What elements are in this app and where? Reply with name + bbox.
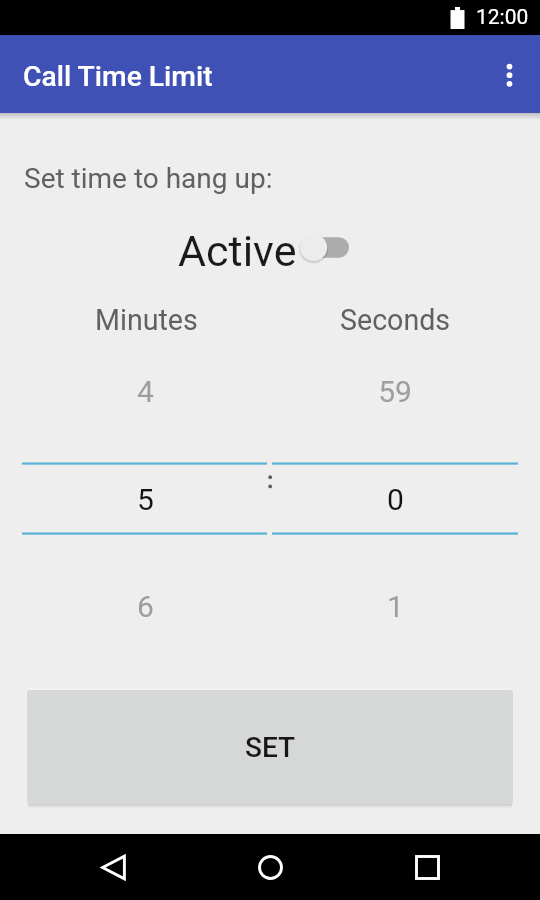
button[interactable]: 6 — [75, 589, 215, 629]
staticText: 6 — [137, 589, 154, 624]
button[interactable]: 5 — [75, 482, 215, 522]
button[interactable]: 4 — [75, 374, 215, 414]
staticText: 59 — [378, 374, 412, 409]
staticText: 5 — [137, 482, 154, 517]
button[interactable]: Active toggle — [297, 233, 353, 263]
staticText: Call Time Limit — [23, 60, 213, 93]
button[interactable]: Recent apps — [403, 834, 451, 900]
staticText: Set time to hang up: — [24, 162, 273, 195]
staticText: SET — [245, 731, 296, 764]
staticText: Seconds — [340, 303, 451, 337]
staticText: Minutes — [95, 303, 198, 337]
button[interactable]: 0 — [325, 482, 465, 522]
staticText: 1 — [387, 589, 404, 624]
staticText: 12:00 — [476, 5, 529, 30]
button[interactable]: SET — [27, 690, 513, 804]
staticText: 0 — [387, 482, 404, 517]
button[interactable]: Back — [89, 834, 137, 900]
button[interactable]: Home — [246, 834, 294, 900]
button[interactable]: 59 — [325, 374, 465, 414]
staticText: Active — [178, 226, 297, 276]
button[interactable]: 1 — [325, 589, 465, 629]
staticText: 4 — [137, 374, 154, 409]
button[interactable]: More options — [485, 50, 533, 98]
